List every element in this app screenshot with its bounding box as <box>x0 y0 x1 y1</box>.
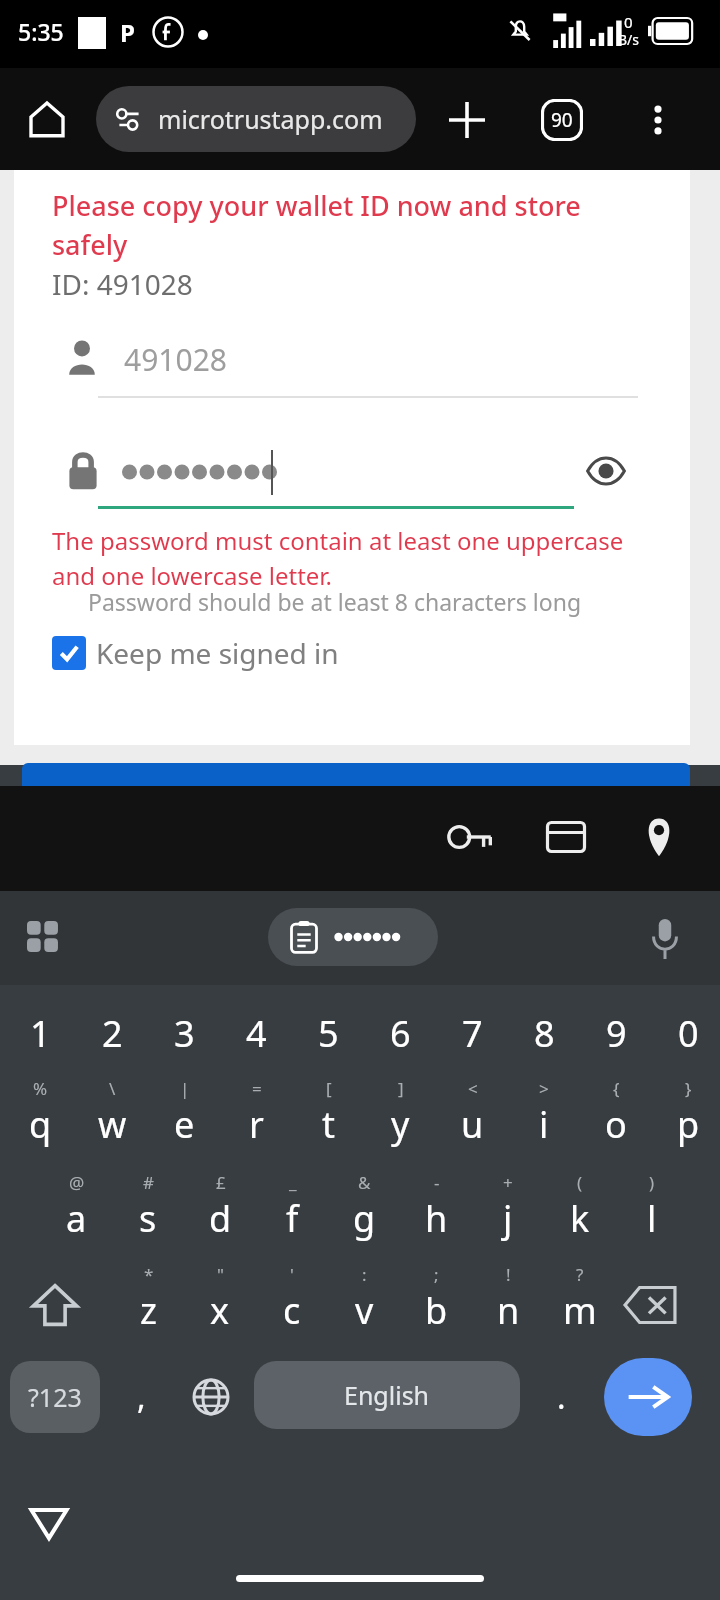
button[interactable]: _ <box>256 1171 328 1257</box>
staticText: ?123 <box>28 1380 82 1414</box>
button[interactable]: ? <box>544 1263 616 1349</box>
button[interactable]: £ <box>184 1171 256 1257</box>
button[interactable]: 1 <box>4 995 76 1071</box>
button[interactable]: 5 <box>292 995 364 1071</box>
button[interactable]: < <box>436 1077 508 1163</box>
staticText: ' <box>290 1263 294 1286</box>
staticText: 9 <box>606 1009 627 1058</box>
button[interactable]: ' <box>256 1263 328 1349</box>
staticText: \ <box>109 1077 116 1100</box>
button[interactable]: 9 <box>580 995 652 1071</box>
staticText: w <box>98 1100 127 1149</box>
button[interactable]: 0 <box>652 995 720 1071</box>
button[interactable]: Backspace <box>608 1265 692 1345</box>
staticText: { <box>613 1077 620 1100</box>
staticText: 5 <box>318 1009 339 1058</box>
button[interactable]: English <box>254 1361 520 1429</box>
button[interactable]: ; <box>400 1263 472 1349</box>
staticText: [ <box>326 1077 332 1100</box>
button[interactable]: = <box>220 1077 292 1163</box>
button[interactable]: Voice input <box>634 908 696 970</box>
button[interactable]: | <box>148 1077 220 1163</box>
button[interactable]: microtrustapp.com <box>96 86 416 152</box>
staticText: £ <box>216 1171 226 1194</box>
staticText: h <box>425 1194 448 1243</box>
staticText: x <box>210 1286 230 1335</box>
button[interactable]: + <box>472 1171 544 1257</box>
button[interactable]: # <box>112 1171 184 1257</box>
staticText: z <box>140 1286 157 1335</box>
staticText: ] <box>398 1077 404 1100</box>
staticText: , <box>137 1375 146 1419</box>
staticText: c <box>283 1286 301 1335</box>
button[interactable]: & <box>328 1171 400 1257</box>
staticText: Please copy your wallet ID now and store… <box>52 187 612 263</box>
staticText: y <box>391 1100 410 1149</box>
button[interactable]: \ <box>76 1077 148 1163</box>
staticText: Keep me signed in <box>96 634 339 672</box>
button[interactable]: 3 <box>148 995 220 1071</box>
button[interactable]: Addresses <box>628 806 690 868</box>
staticText: t <box>322 1100 335 1149</box>
button[interactable]: 2 <box>76 995 148 1071</box>
button[interactable]: Change language <box>180 1361 242 1433</box>
staticText: " <box>217 1263 224 1286</box>
button[interactable]: @ <box>40 1171 112 1257</box>
button[interactable]: ?123 <box>10 1361 100 1433</box>
button[interactable]: 7 <box>436 995 508 1071</box>
staticText: @ <box>69 1171 85 1194</box>
button[interactable]: Hide keyboard <box>14 1488 84 1558</box>
button[interactable]: 4 <box>220 995 292 1071</box>
staticText: e <box>174 1100 195 1149</box>
button[interactable]: More options <box>628 90 688 150</box>
button[interactable]: Keep me signed in <box>52 628 339 678</box>
button[interactable]: New tab <box>437 90 497 150</box>
button[interactable]: " <box>184 1263 256 1349</box>
button[interactable]: ! <box>472 1263 544 1349</box>
staticText: The password must contain at least one u… <box>52 524 662 592</box>
button[interactable]: Show password <box>578 443 634 499</box>
staticText: P <box>120 16 135 49</box>
staticText: 6 <box>390 1009 411 1058</box>
button[interactable]: Home <box>14 86 80 152</box>
staticText: - <box>434 1171 440 1194</box>
button[interactable]: [ <box>292 1077 364 1163</box>
staticText: 491028 <box>124 339 227 380</box>
staticText: 4 <box>246 1009 267 1058</box>
button[interactable]: 6 <box>364 995 436 1071</box>
button[interactable]: ) <box>616 1171 688 1257</box>
staticText: 1 <box>30 1009 51 1058</box>
staticText: 5:35 <box>18 16 64 47</box>
staticText: ( <box>577 1171 583 1194</box>
button[interactable]: > <box>508 1077 580 1163</box>
button[interactable]: 8 <box>508 995 580 1071</box>
staticText: ? <box>576 1263 584 1286</box>
staticText: g <box>353 1194 376 1243</box>
button[interactable]: . <box>530 1361 592 1433</box>
button[interactable]: Shift <box>10 1265 100 1345</box>
button[interactable]: , <box>110 1361 172 1433</box>
staticText: d <box>209 1194 232 1243</box>
button[interactable]: ( <box>544 1171 616 1257</box>
staticText: B/s <box>618 30 640 49</box>
button[interactable]: % <box>4 1077 76 1163</box>
button[interactable]: } <box>652 1077 720 1163</box>
button[interactable]: - <box>400 1171 472 1257</box>
button[interactable]: { <box>580 1077 652 1163</box>
button[interactable]: * <box>112 1263 184 1349</box>
button[interactable]: : <box>328 1263 400 1349</box>
button[interactable]: Passwords <box>440 806 502 868</box>
button[interactable]: Tabs <box>532 90 592 150</box>
button[interactable]: ] <box>364 1077 436 1163</box>
button[interactable]: Enter <box>604 1358 692 1436</box>
staticText: . <box>557 1375 566 1419</box>
staticText: > <box>539 1077 549 1100</box>
button[interactable] <box>22 763 690 803</box>
staticText: v <box>355 1286 374 1335</box>
staticText: = <box>252 1077 262 1100</box>
button[interactable]: Payment methods <box>535 806 597 868</box>
staticText: u <box>461 1100 484 1149</box>
button[interactable]: Keyboard options <box>14 908 76 970</box>
button[interactable] <box>268 908 438 966</box>
staticText: * <box>144 1263 154 1286</box>
